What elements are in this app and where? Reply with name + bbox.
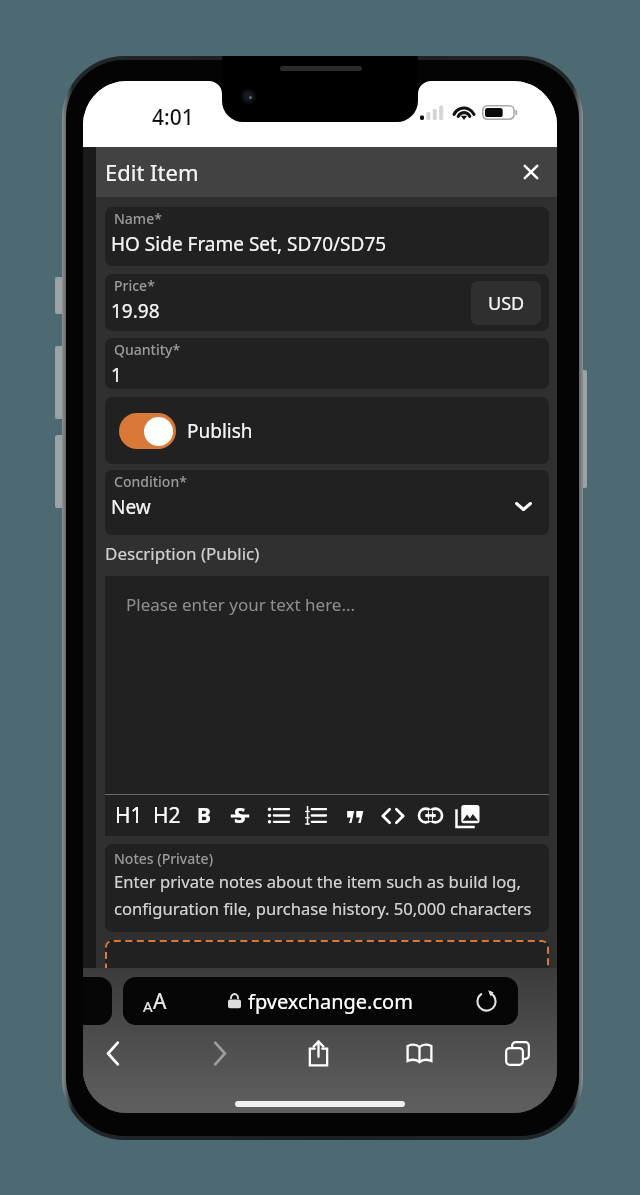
staticText: USD (488, 291, 525, 316)
staticText: Enter private notes about the item such … (114, 870, 521, 893)
staticText: A (153, 987, 167, 1016)
button[interactable]: Price* (105, 274, 549, 331)
staticText: Condition* (114, 472, 187, 491)
staticText: H2 (153, 801, 181, 830)
staticText: 1 (111, 362, 122, 388)
staticText: Description (Public) (105, 542, 260, 565)
button[interactable]: Bulleted list (262, 795, 294, 836)
button[interactable]: Tabs (494, 1030, 540, 1076)
button[interactable]: Code (377, 795, 409, 836)
staticText: 4:01 (152, 103, 194, 132)
button[interactable]: Numbered list (299, 795, 331, 836)
button[interactable]: Link (414, 795, 446, 836)
staticText: H1 (115, 801, 143, 830)
button[interactable]: Close (507, 148, 555, 196)
button[interactable]: Publish (105, 397, 549, 464)
button[interactable]: H2 (148, 795, 186, 836)
button[interactable]: Please enter your text here... (105, 576, 549, 794)
button[interactable]: Notes (Private) (105, 844, 549, 932)
staticText: configuration file, purchase history. 50… (114, 897, 532, 920)
button[interactable]: Bookmarks (396, 1030, 442, 1076)
button[interactable]: Insert image (452, 795, 484, 836)
staticText: Please enter your text here... (126, 593, 356, 616)
button[interactable]: H1 (110, 795, 148, 836)
staticText: Publish (187, 418, 253, 444)
staticText: A (143, 996, 153, 1016)
staticText: 19.98 (111, 298, 160, 324)
button[interactable]: Condition* (105, 470, 549, 535)
button[interactable]: Edit Item (96, 147, 557, 197)
staticText: B (197, 801, 211, 830)
button[interactable]: Quantity* (105, 338, 549, 389)
button[interactable]: B (185, 795, 223, 836)
staticText: Price* (114, 276, 155, 295)
button[interactable]: Strikethrough (224, 795, 256, 836)
button[interactable]: A (123, 977, 187, 1025)
button[interactable]: Forward (196, 1030, 242, 1076)
button[interactable]: Reload (454, 977, 518, 1025)
button[interactable]: USD (471, 281, 541, 325)
staticText: S (234, 801, 246, 830)
button[interactable]: Share (295, 1030, 341, 1076)
staticText: Edit Item (105, 157, 199, 187)
button[interactable]: Select an image (105, 940, 549, 1012)
staticText: New (111, 494, 151, 520)
staticText: HO Side Frame Set, SD70/SD75 (111, 231, 387, 257)
button[interactable]: Name* (105, 207, 549, 266)
staticText: Select an image (260, 963, 394, 988)
staticText: Name* (114, 209, 162, 228)
button[interactable]: Quote (339, 795, 371, 836)
button[interactable]: A (123, 977, 518, 1025)
staticText: Quantity* (114, 340, 181, 359)
button[interactable]: Back (90, 1030, 136, 1076)
staticText: Notes (Private) (114, 849, 214, 868)
staticText: fpvexchange.com (248, 988, 413, 1015)
